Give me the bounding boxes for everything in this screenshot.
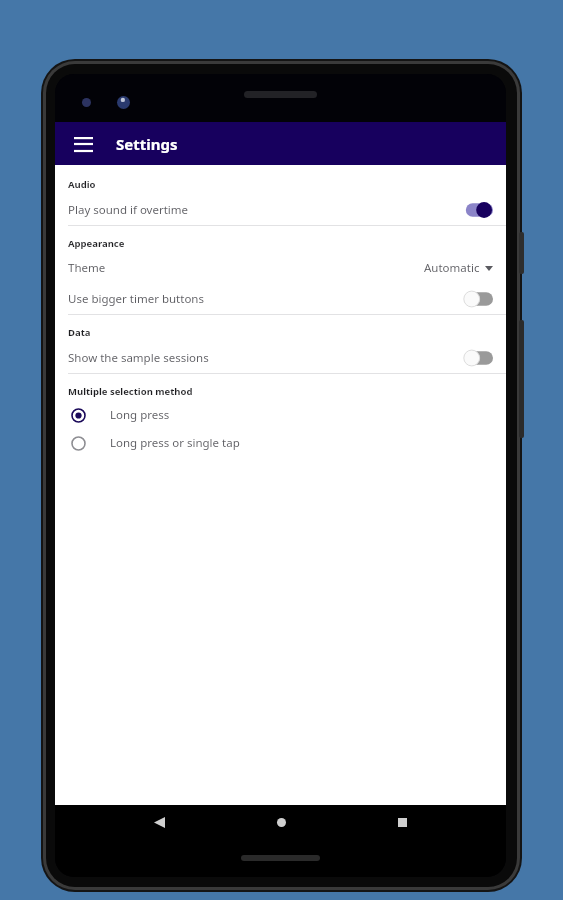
- button[interactable]: Long press: [55, 401, 506, 429]
- button[interactable]: Toggle, off: [459, 347, 493, 369]
- staticText: Data: [68, 326, 91, 339]
- button[interactable]: Show the sample sessions: [55, 342, 506, 373]
- button[interactable]: Use bigger timer buttons: [55, 283, 506, 314]
- staticText: Theme: [68, 260, 106, 276]
- button[interactable]: Toggle, off: [459, 288, 493, 310]
- button[interactable]: Back: [142, 805, 176, 839]
- staticText: Multiple selection method: [68, 385, 193, 398]
- button[interactable]: Home: [264, 805, 298, 839]
- staticText: Play sound if overtime: [68, 202, 189, 218]
- staticText: Appearance: [68, 237, 125, 250]
- button[interactable]: Play sound if overtime: [55, 194, 506, 225]
- staticText: Audio: [68, 178, 96, 191]
- staticText: Show the sample sessions: [68, 350, 209, 366]
- button[interactable]: Theme: [55, 253, 506, 283]
- staticText: Settings: [116, 134, 178, 154]
- button[interactable]: Toggle, on: [459, 199, 493, 221]
- button[interactable]: Open navigation menu: [64, 125, 102, 163]
- staticText: Use bigger timer buttons: [68, 291, 204, 307]
- staticText: Automatic: [424, 260, 480, 276]
- staticText: Long press or single tap: [110, 435, 240, 451]
- button[interactable]: Long press or single tap: [55, 429, 506, 457]
- staticText: Long press: [110, 407, 170, 423]
- button[interactable]: Recent apps: [385, 805, 419, 839]
